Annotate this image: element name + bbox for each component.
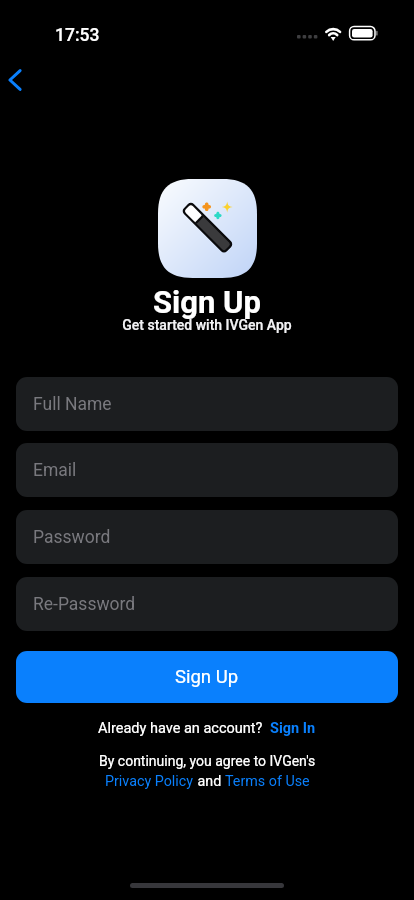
staticText: Terms of Use: [225, 773, 310, 790]
button[interactable]: Re-Password: [16, 577, 398, 631]
button[interactable]: Password: [16, 510, 398, 564]
staticText: Sign Up: [0, 284, 414, 320]
button[interactable]: Sign Up: [16, 651, 398, 703]
staticText: Password: [33, 527, 111, 548]
staticText: By continuing, you agree to IVGen's: [99, 753, 316, 769]
staticText: Privacy Policy: [105, 773, 194, 790]
staticText: and: [194, 773, 225, 790]
button[interactable]: Back: [0, 58, 37, 102]
staticText: Sign Up: [175, 666, 239, 688]
staticText: 17:53: [55, 25, 100, 46]
staticText: Email: [33, 460, 77, 481]
button[interactable]: Email: [16, 443, 398, 497]
button[interactable]: Privacy Policy: [105, 773, 194, 790]
staticText: Get started with IVGen App: [0, 317, 414, 333]
button[interactable]: Sign In: [270, 720, 316, 737]
staticText: Re-Password: [33, 594, 136, 615]
staticText: Sign In: [270, 720, 316, 737]
button[interactable]: Terms of Use: [225, 773, 310, 790]
staticText: Already have an account?: [98, 720, 263, 737]
staticText: Full Name: [33, 394, 112, 415]
button[interactable]: Full Name: [16, 377, 398, 431]
